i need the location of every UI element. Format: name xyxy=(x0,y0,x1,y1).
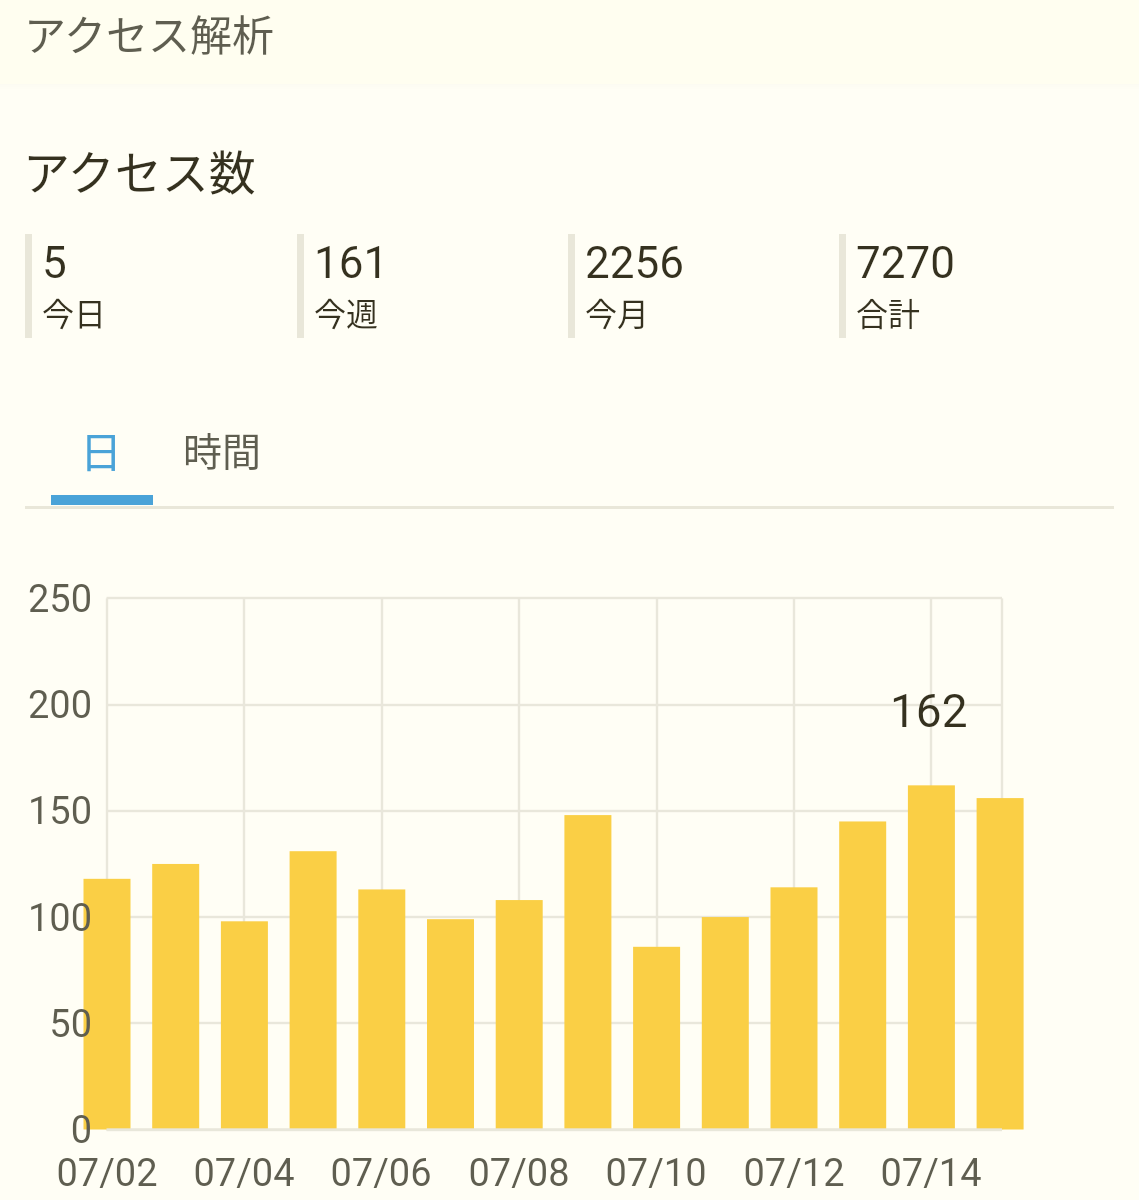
staticText: 07/04 xyxy=(193,1151,295,1196)
staticText: 日 xyxy=(80,419,123,480)
staticText: 5 xyxy=(42,237,67,289)
staticText: 161 xyxy=(314,237,389,289)
staticText: 07/14 xyxy=(880,1151,982,1196)
staticText: 162 xyxy=(890,684,968,738)
staticText: 150 xyxy=(27,789,92,834)
button[interactable]: 日 xyxy=(41,404,162,494)
staticText: アクセス数 xyxy=(23,135,256,203)
staticText: 200 xyxy=(27,683,92,728)
staticText: 07/08 xyxy=(468,1151,570,1196)
staticText: 07/12 xyxy=(743,1151,845,1196)
staticText: 07/02 xyxy=(56,1151,158,1196)
staticText: 時間 xyxy=(183,421,262,477)
staticText: 100 xyxy=(27,896,92,941)
button[interactable]: 2256 xyxy=(568,234,684,338)
button[interactable]: 7270 xyxy=(839,234,955,338)
staticText: 07/10 xyxy=(605,1151,707,1196)
staticText: 250 xyxy=(27,577,92,622)
staticText: 50 xyxy=(49,1002,92,1047)
staticText: 合計 xyxy=(856,289,921,335)
staticText: 07/06 xyxy=(330,1151,432,1196)
button[interactable]: 161 xyxy=(297,234,389,338)
staticText: アクセス解析 xyxy=(24,2,274,63)
staticText: 0 xyxy=(70,1108,92,1153)
button[interactable]: 5 xyxy=(25,234,107,338)
other: 日別アクセス数の棒グラフ xyxy=(80,590,1030,1140)
staticText: 7270 xyxy=(856,237,955,289)
staticText: 2256 xyxy=(585,237,684,289)
staticText: 今週 xyxy=(314,289,379,335)
staticText: 今月 xyxy=(585,289,650,335)
button[interactable]: 時間 xyxy=(162,404,283,494)
staticText: 今日 xyxy=(42,289,107,335)
